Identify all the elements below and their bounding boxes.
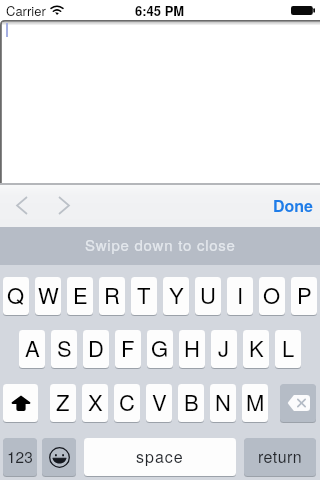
staticText: I [237, 279, 244, 311]
button[interactable]: U [195, 277, 221, 315]
button[interactable]: P [291, 277, 317, 315]
staticText: P [297, 279, 312, 311]
button[interactable]: Z [50, 384, 76, 422]
button[interactable]: R [99, 277, 125, 315]
staticText: N [215, 386, 231, 418]
button[interactable]: Q [3, 277, 29, 315]
staticText: R [104, 279, 120, 311]
staticText: space [136, 445, 184, 468]
button[interactable]: S [51, 330, 77, 368]
button[interactable]: W [35, 277, 61, 315]
staticText: Done [273, 194, 314, 217]
staticText: Y [169, 279, 184, 311]
staticText: Z [56, 386, 70, 418]
button[interactable]: Next field [51, 184, 77, 226]
staticText: C [119, 386, 135, 418]
button[interactable]: V [146, 384, 172, 422]
button[interactable]: J [211, 330, 237, 368]
staticText: W [38, 279, 59, 311]
staticText: J [218, 332, 230, 364]
button[interactable]: H [179, 330, 205, 368]
button[interactable]: L [275, 330, 301, 368]
button[interactable]: Emoji [42, 438, 76, 476]
button[interactable]: X [82, 384, 108, 422]
staticText: O [263, 279, 281, 311]
staticText: return [258, 445, 303, 468]
staticText: Carrier [6, 1, 46, 20]
staticText: D [88, 332, 104, 364]
button[interactable]: Backspace [280, 384, 316, 422]
button[interactable]: Y [163, 277, 189, 315]
staticText: G [151, 332, 169, 364]
staticText: Q [7, 279, 25, 311]
button[interactable]: C [114, 384, 140, 422]
staticText: X [88, 386, 103, 418]
staticText: A [25, 332, 40, 364]
button[interactable]: K [243, 330, 269, 368]
staticText: S [57, 332, 72, 364]
button[interactable]: F [115, 330, 141, 368]
button[interactable]: M [242, 384, 268, 422]
staticText: M [246, 386, 265, 418]
button[interactable]: Previous field [9, 184, 35, 226]
button[interactable]: Shift [3, 384, 38, 422]
button[interactable]: T [131, 277, 157, 315]
staticText: 123 [7, 445, 33, 467]
staticText: V [152, 386, 167, 418]
button[interactable]: I [227, 277, 253, 315]
button[interactable]: space [84, 438, 236, 476]
staticText: F [121, 332, 135, 364]
staticText: L [282, 332, 295, 364]
button[interactable]: 123 [3, 438, 37, 476]
staticText: T [137, 279, 151, 311]
staticText: K [249, 332, 264, 364]
staticText: E [73, 279, 88, 311]
button[interactable]: O [259, 277, 285, 315]
button[interactable]: return [244, 438, 316, 476]
button[interactable]: D [83, 330, 109, 368]
button[interactable]: G [147, 330, 173, 368]
staticText: Swipe down to close [85, 234, 236, 255]
button[interactable]: A [19, 330, 45, 368]
button[interactable]: B [178, 384, 204, 422]
staticText: H [184, 332, 200, 364]
button[interactable]: N [210, 384, 236, 422]
staticText: B [184, 386, 199, 418]
staticText: U [200, 279, 216, 311]
button[interactable]: Done [263, 184, 320, 226]
staticText: 6:45 PM [135, 1, 185, 20]
button[interactable]: E [67, 277, 93, 315]
